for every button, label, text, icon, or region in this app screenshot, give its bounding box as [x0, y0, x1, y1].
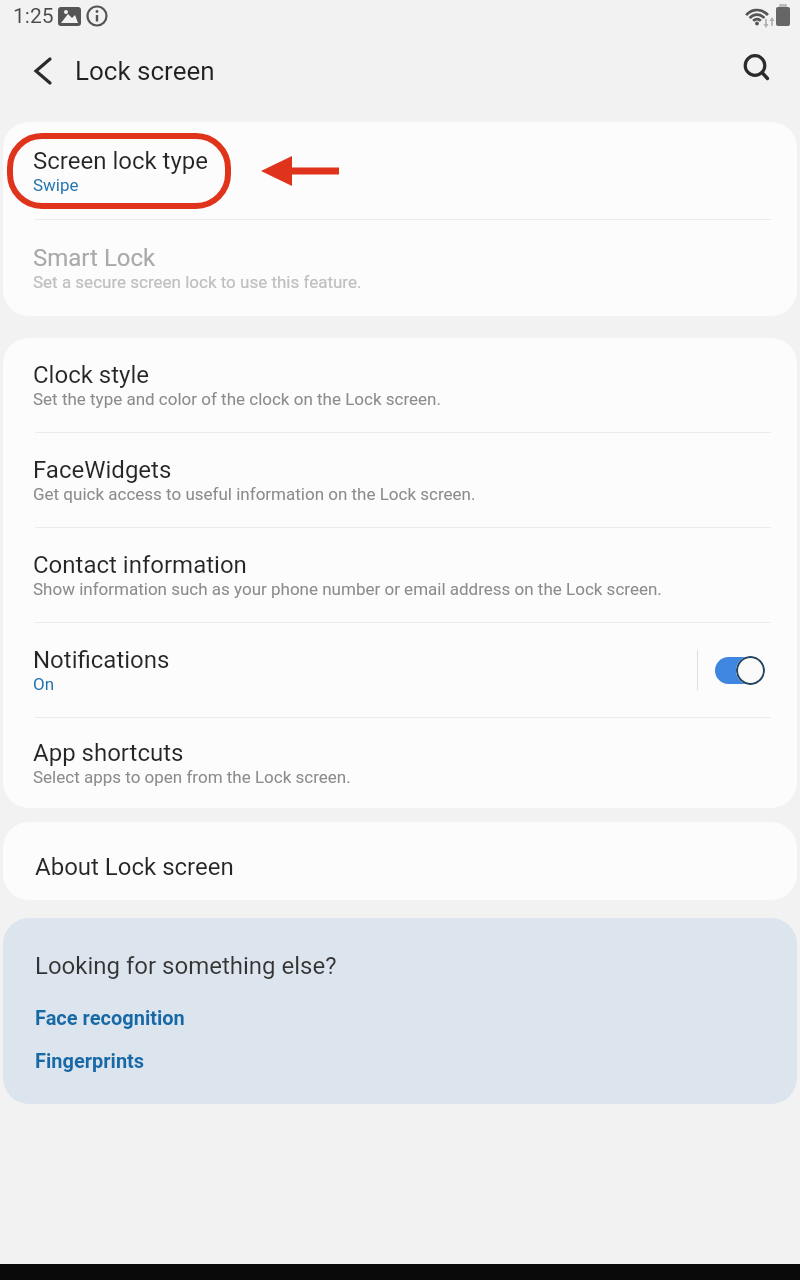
staticText: Set a secure screen lock to use this fea…: [33, 272, 362, 292]
button[interactable]: Contact information: [3, 528, 797, 622]
staticText: Swipe: [33, 175, 79, 195]
staticText: Show information such as your phone numb…: [33, 579, 662, 599]
staticText: FaceWidgets: [33, 456, 172, 484]
button[interactable]: Screen lock type: [3, 122, 797, 219]
staticText: On: [33, 674, 55, 694]
button[interactable]: Clock style: [3, 338, 797, 432]
button[interactable]: [715, 655, 765, 685]
staticText: Looking for something else?: [35, 952, 337, 980]
button[interactable]: App shortcuts: [3, 718, 797, 808]
staticText: Notifications: [33, 646, 170, 674]
staticText: Lock screen: [75, 56, 215, 86]
button[interactable]: About Lock screen: [3, 822, 797, 900]
staticText: Smart Lock: [33, 244, 156, 272]
button[interactable]: Smart Lock: [3, 220, 797, 316]
button[interactable]: Notifications: [3, 623, 797, 717]
button[interactable]: [732, 49, 776, 93]
staticText: 1:25: [13, 4, 54, 29]
staticText: Set the type and color of the clock on t…: [33, 389, 441, 409]
staticText: Get quick access to useful information o…: [33, 484, 476, 504]
staticText: Contact information: [33, 551, 247, 579]
staticText: Select apps to open from the Lock screen…: [33, 767, 351, 787]
button[interactable]: Fingerprints: [35, 1049, 145, 1072]
button[interactable]: FaceWidgets: [3, 433, 797, 527]
staticText: App shortcuts: [33, 739, 184, 767]
staticText: Clock style: [33, 361, 149, 389]
staticText: Screen lock type: [33, 147, 208, 175]
button[interactable]: [20, 49, 64, 93]
button[interactable]: Face recognition: [35, 1006, 185, 1029]
staticText: About Lock screen: [35, 853, 234, 881]
